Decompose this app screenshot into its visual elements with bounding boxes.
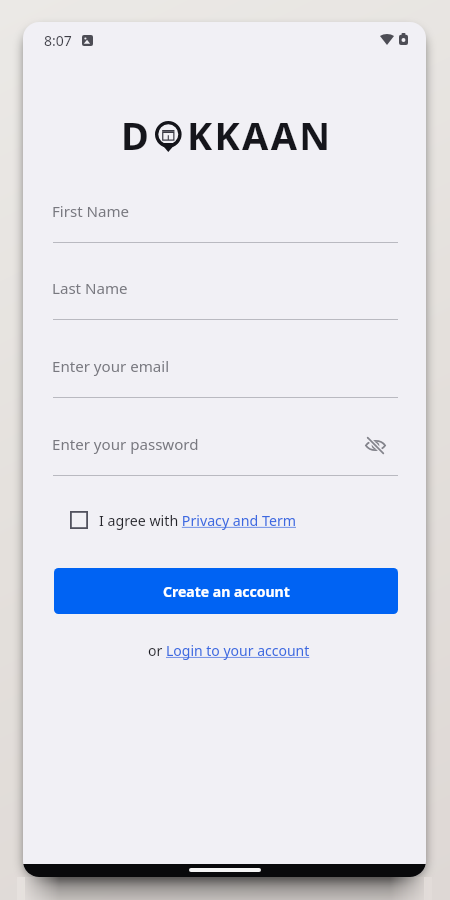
button[interactable]: Toggle password visibility [364,434,387,457]
button[interactable]: Enter your password [53,430,398,476]
button[interactable]: Create an account [54,568,398,614]
staticText: First Name [52,201,130,222]
staticText: I agree with Privacy and Term [99,511,297,530]
staticText: or [148,641,166,660]
button[interactable]: Last Name [53,274,398,320]
staticText: Create an account [163,582,290,601]
staticText: 8:07 [44,31,72,50]
staticText: Login to your account [166,641,310,660]
button[interactable]: First Name [53,197,398,243]
staticText: D [121,109,152,161]
button[interactable]: Login to your account [166,641,310,660]
staticText: Enter your password [52,434,199,455]
button[interactable]: Enter your email [53,352,398,398]
staticText: Enter your email [52,356,170,377]
button[interactable]: I agree with Privacy and Term [70,508,297,532]
other: Battery [399,33,408,45]
staticText: KKAAN [187,109,333,161]
staticText: Last Name [52,278,128,299]
other: Wi-Fi [380,33,394,45]
